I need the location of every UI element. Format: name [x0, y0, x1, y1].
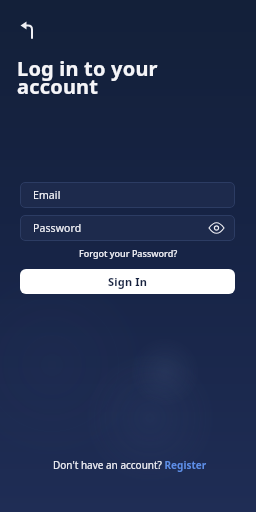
button[interactable]: Forgot your Password? — [79, 247, 178, 259]
button[interactable]: Don't have an account? Register — [53, 458, 207, 472]
button[interactable]: Sign In — [20, 269, 235, 294]
button[interactable]: Password — [20, 215, 235, 241]
button[interactable]: Email — [20, 182, 235, 208]
staticText: Sign In — [108, 274, 148, 289]
button[interactable] — [12, 14, 42, 44]
staticText: account — [17, 73, 99, 100]
staticText: Password — [33, 221, 82, 235]
staticText: Email — [33, 188, 61, 202]
staticText: Log in to your — [17, 55, 158, 82]
